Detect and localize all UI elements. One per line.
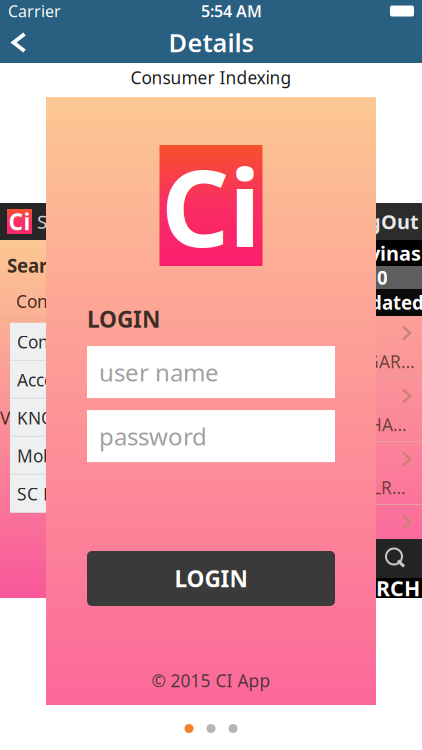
staticText: 5:54 AM [201,0,262,22]
staticText: ABAD… [342,539,401,562]
staticText: user name [99,356,219,388]
staticText: KNO N [17,406,73,429]
staticText: SC No [17,482,66,505]
staticText: 4430 [344,265,388,290]
staticText: MAHA… [342,413,407,436]
staticText: LogOut [344,208,419,235]
button[interactable]: Back [0,22,26,62]
staticText: password [99,420,207,452]
staticText: Se [37,209,58,234]
staticText: Mobile [17,444,72,467]
staticText: © 2015 CI App [151,669,270,692]
staticText: SEARCH [337,574,420,602]
staticText: LOGIN [87,304,160,334]
staticText: LOGIN [174,563,247,593]
staticText: Consumer Indexing [130,66,291,89]
staticText: Ravinash ! [344,240,422,266]
staticText: Updated [344,290,422,315]
staticText: Details [168,26,253,59]
staticText: Accou [17,368,65,391]
staticText: Consu [16,290,67,313]
staticText: Search [7,253,69,278]
staticText: Carrier [8,0,61,22]
staticText: PALLR… [342,476,406,499]
staticText: V [0,406,10,429]
button[interactable]: LOGIN [46,551,376,606]
staticText: Ci [161,135,261,276]
staticText: Ci [8,206,30,236]
staticText: Consu [17,330,68,353]
staticText: NAGAR… [342,350,415,373]
